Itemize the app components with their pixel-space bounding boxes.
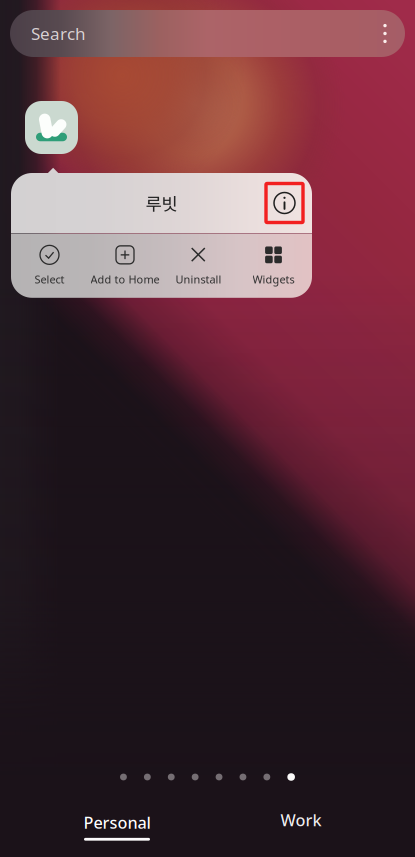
button[interactable]: Work (251, 810, 351, 830)
button[interactable]: Widgets (235, 236, 312, 295)
button[interactable]: Add to Home (88, 236, 162, 295)
button[interactable]: Search (10, 10, 405, 57)
staticText: Widgets (252, 272, 294, 287)
button[interactable]: App info (266, 183, 303, 222)
button[interactable]: Personal (55, 810, 179, 842)
staticText: Personal (83, 811, 150, 833)
staticText: Work (280, 809, 321, 831)
staticText: 루빗 (145, 190, 177, 216)
staticText: Add to Home (90, 272, 159, 287)
staticText: Uninstall (175, 272, 221, 287)
staticText: Select (34, 272, 64, 287)
staticText: Search (31, 22, 86, 45)
button[interactable]: Uninstall (162, 236, 235, 295)
button[interactable]: Select (11, 236, 88, 295)
